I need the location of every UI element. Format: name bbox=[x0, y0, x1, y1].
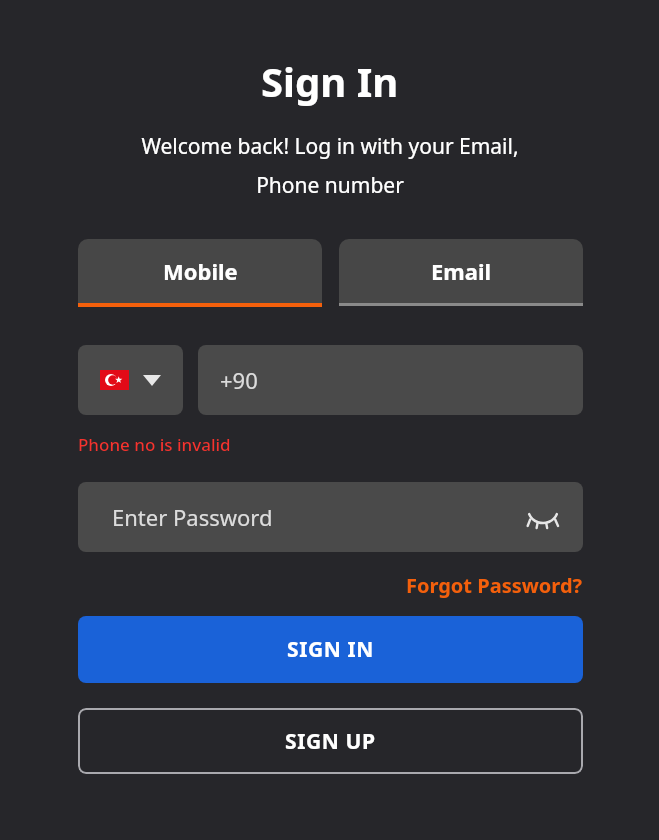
staticText: Enter Password bbox=[112, 502, 273, 532]
button[interactable]: Mobile bbox=[78, 239, 322, 307]
button[interactable]: Select country code bbox=[78, 345, 183, 415]
button[interactable]: Enter Password bbox=[78, 482, 583, 552]
staticText: Welcome back! Log in with your Email, Ph… bbox=[141, 132, 519, 199]
staticText: Sign In bbox=[261, 54, 399, 108]
button[interactable]: Email bbox=[339, 239, 583, 306]
button[interactable]: Forgot Password? bbox=[406, 572, 583, 599]
button[interactable]: Show password bbox=[523, 497, 563, 537]
staticText: SIGN IN bbox=[287, 635, 374, 664]
button[interactable]: SIGN UP bbox=[78, 708, 583, 774]
staticText: Mobile bbox=[163, 256, 238, 286]
staticText: Email bbox=[431, 256, 492, 286]
staticText: Phone no is invalid bbox=[78, 433, 231, 456]
staticText: Forgot Password? bbox=[406, 572, 583, 599]
staticText: SIGN UP bbox=[285, 727, 376, 756]
button[interactable]: SIGN IN bbox=[78, 616, 583, 683]
button[interactable]: +90 bbox=[198, 345, 583, 415]
staticText: +90 bbox=[220, 365, 258, 395]
